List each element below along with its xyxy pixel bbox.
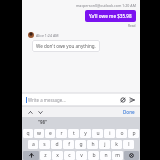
button[interactable]: r [56, 129, 67, 138]
button[interactable]: f [63, 140, 74, 149]
button[interactable]: Alice avatar [28, 32, 34, 38]
button[interactable]: h [87, 140, 98, 149]
staticText: c [68, 152, 71, 159]
staticText: u [96, 130, 100, 137]
staticText: i [109, 130, 111, 137]
staticText: l [128, 141, 130, 148]
staticText: Alice 1:24 AM [36, 33, 59, 38]
staticText: q [26, 130, 30, 137]
button[interactable]: Done [122, 109, 136, 115]
button[interactable]: a [28, 140, 38, 149]
staticText: w [37, 130, 41, 137]
staticText: We don't owe you anything. [36, 43, 96, 49]
staticText: s [43, 141, 46, 148]
button[interactable]: k [111, 140, 122, 149]
button[interactable]: o [116, 129, 127, 138]
button[interactable]: p [128, 129, 139, 138]
staticText: h [91, 141, 95, 148]
button[interactable]: Next field [36, 108, 44, 116]
staticText: f [68, 141, 70, 148]
button[interactable]: d [51, 140, 62, 149]
button[interactable]: g [75, 140, 86, 149]
staticText: b [92, 152, 96, 159]
button[interactable]: m [112, 151, 123, 160]
button[interactable]: u [92, 129, 103, 138]
button[interactable]: w [34, 129, 44, 138]
button[interactable]: Backspace [124, 151, 139, 160]
staticText: macperson0@outlook.com 1:20 AM [76, 3, 136, 8]
button[interactable]: j [99, 140, 110, 149]
staticText: Ya'll owe me $35.98 [89, 13, 132, 19]
staticText: Write a message... [28, 97, 66, 103]
button[interactable]: Write a message... [28, 97, 119, 103]
staticText: r [60, 130, 63, 137]
staticText: n [104, 152, 108, 159]
button[interactable]: Previous field [26, 108, 34, 116]
button[interactable]: "98" [22, 117, 62, 127]
staticText: z [44, 152, 47, 159]
staticText: v [80, 152, 83, 159]
button[interactable]: v [76, 151, 87, 160]
staticText: Read [128, 24, 136, 28]
staticText: g [79, 141, 83, 148]
staticText: y [84, 130, 87, 137]
button[interactable]: q [23, 129, 33, 138]
staticText: Done [123, 109, 135, 115]
button[interactable]: z [40, 151, 51, 160]
button[interactable]: b [88, 151, 99, 160]
button[interactable]: Ya'll owe me $35.98 [85, 10, 136, 22]
button[interactable]: x [52, 151, 63, 160]
button[interactable]: y [80, 129, 91, 138]
staticText: t [73, 130, 75, 137]
button[interactable]: Shift [23, 151, 39, 160]
button[interactable]: l [123, 140, 134, 149]
button[interactable]: s [39, 140, 50, 149]
button[interactable]: c [64, 151, 75, 160]
staticText: o [120, 130, 124, 137]
button[interactable]: Send [128, 96, 136, 104]
button[interactable]: Add attachment [119, 96, 127, 104]
staticText: a [32, 141, 35, 148]
button[interactable]: e [45, 129, 55, 138]
staticText: p [132, 130, 136, 137]
staticText: d [55, 141, 59, 148]
staticText: e [49, 130, 52, 137]
button[interactable]: We don't owe you anything. [32, 40, 100, 52]
button[interactable]: n [100, 151, 111, 160]
staticText: j [104, 141, 106, 148]
staticText: k [115, 141, 118, 148]
button[interactable]: i [104, 129, 115, 138]
staticText: m [115, 152, 120, 159]
button[interactable]: t [68, 129, 79, 138]
staticText: x [56, 152, 59, 159]
staticText: "98" [38, 119, 47, 125]
